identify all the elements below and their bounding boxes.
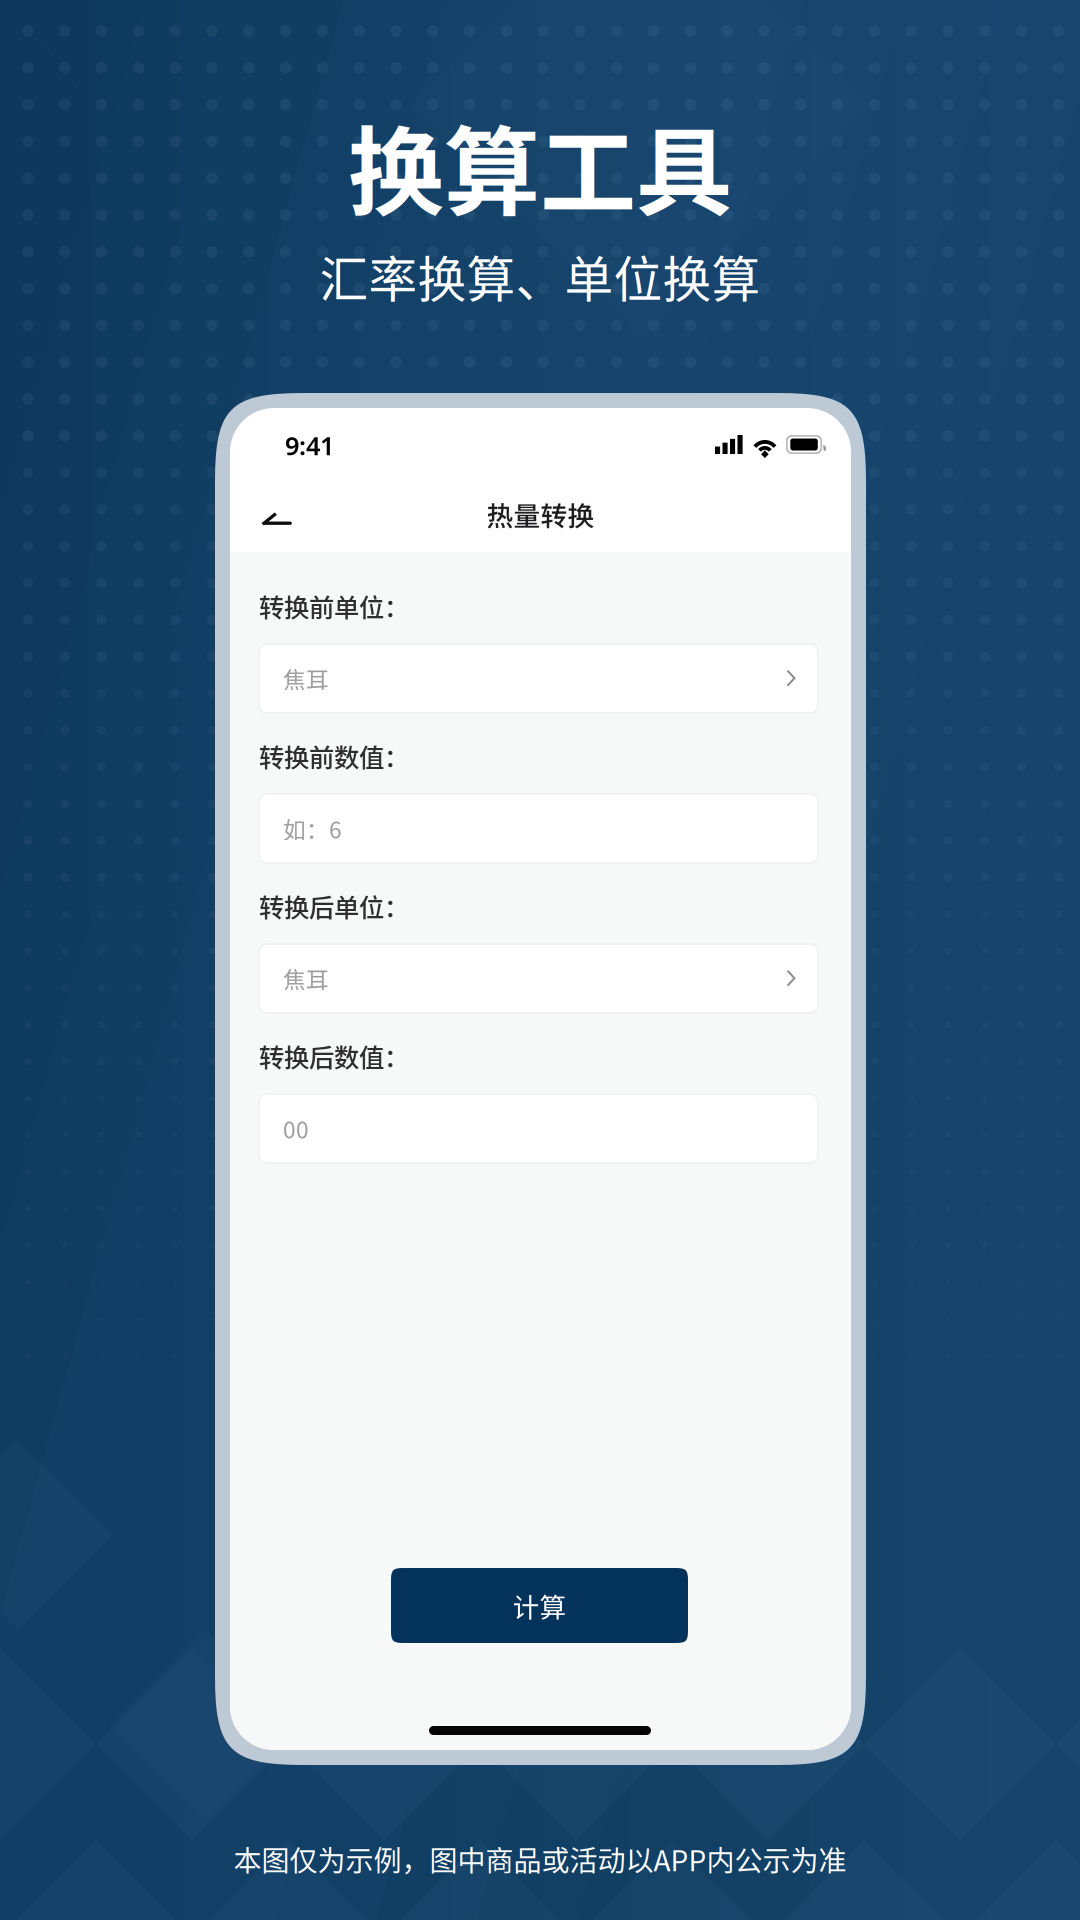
button[interactable]: 焦耳	[259, 644, 818, 713]
staticText: 转换后数值：	[259, 1038, 409, 1074]
staticText: 焦耳	[283, 962, 329, 995]
button[interactable]: 计算	[391, 1568, 688, 1643]
staticText: 转换前数值：	[259, 738, 409, 774]
staticText: 计算	[512, 1586, 566, 1625]
staticText: 9:41	[285, 428, 334, 463]
staticText: 热量转换	[486, 495, 594, 533]
button[interactable]: 如：6	[259, 794, 818, 863]
staticText: 00	[283, 1112, 309, 1145]
staticText: 换算工具	[348, 95, 732, 234]
button[interactable]: Back	[262, 485, 324, 541]
staticText: 本图仅为示例，图中商品或活动以APP内公示为准	[233, 1839, 846, 1879]
staticText: 转换前单位：	[259, 588, 409, 624]
staticText: 汇率换算、单位换算	[319, 241, 760, 311]
staticText: 如：6	[283, 812, 342, 845]
button[interactable]: 00	[259, 1094, 818, 1163]
staticText: 焦耳	[283, 662, 329, 695]
button[interactable]: 焦耳	[259, 944, 818, 1013]
staticText: 转换后单位：	[259, 888, 409, 924]
